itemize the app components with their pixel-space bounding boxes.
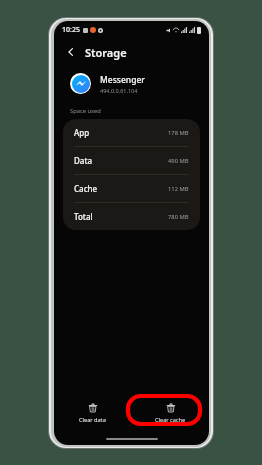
button[interactable]: Back: [63, 44, 79, 60]
staticText: 780 MB: [168, 213, 189, 221]
staticText: Cache: [74, 183, 98, 194]
staticText: 112 MB: [168, 185, 189, 193]
staticText: Space used: [70, 107, 101, 115]
staticText: Total: [74, 211, 93, 222]
staticText: Data: [74, 155, 93, 166]
staticText: Clear cache: [155, 416, 186, 424]
button[interactable]: Cache: [63, 175, 200, 203]
button[interactable]: Clear cache: [145, 400, 196, 427]
staticText: 178 MB: [168, 129, 189, 137]
button[interactable]: Data: [63, 147, 200, 175]
staticText: 490 MB: [168, 157, 189, 165]
staticText: 494.0.0.61.104: [100, 87, 138, 94]
staticText: 10:25: [62, 25, 80, 35]
staticText: Clear data: [79, 416, 106, 424]
button[interactable]: App: [63, 119, 200, 147]
button[interactable]: Clear data: [69, 400, 116, 427]
staticText: Messenger: [100, 74, 145, 86]
staticText: Storage: [85, 45, 127, 60]
button[interactable]: Total: [63, 203, 200, 230]
staticText: App: [74, 127, 90, 138]
